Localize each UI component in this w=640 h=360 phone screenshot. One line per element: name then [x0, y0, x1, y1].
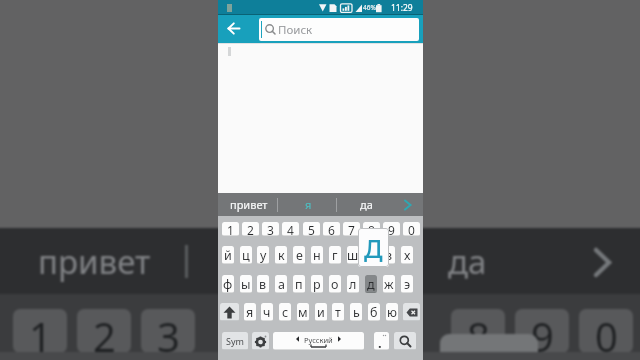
- button[interactable]: б: [368, 303, 380, 321]
- button[interactable]: Поиск: [259, 18, 419, 41]
- staticText: в: [259, 276, 267, 293]
- button[interactable]: я: [293, 193, 323, 216]
- staticText: привет: [230, 197, 268, 212]
- button[interactable]: г: [329, 246, 341, 264]
- button[interactable]: я: [244, 303, 256, 321]
- staticText: е: [296, 247, 303, 264]
- button[interactable]: э: [401, 275, 413, 293]
- button[interactable]: Sym: [222, 332, 248, 350]
- button[interactable]: р: [311, 275, 323, 293]
- staticText: с: [282, 304, 289, 321]
- staticText: о: [331, 276, 339, 293]
- button[interactable]: ь: [350, 303, 362, 321]
- staticText: м: [298, 304, 308, 321]
- staticText: э: [404, 276, 411, 293]
- button[interactable]: .: [374, 332, 389, 350]
- staticText: ж: [384, 276, 394, 293]
- button[interactable]: ц: [240, 246, 252, 264]
- staticText: з: [386, 247, 393, 264]
- staticText: ю: [387, 304, 397, 321]
- staticText: п: [295, 276, 303, 293]
- button[interactable]: з: [383, 246, 395, 264]
- button[interactable]: 7: [343, 222, 360, 236]
- button[interactable]: в: [257, 275, 269, 293]
- staticText: 6: [328, 222, 335, 236]
- staticText: Д: [364, 231, 383, 265]
- button[interactable]: м: [297, 303, 309, 321]
- button[interactable]: 6: [323, 222, 340, 236]
- staticText: 3: [267, 222, 274, 236]
- staticText: и: [317, 304, 325, 321]
- staticText: ы: [241, 276, 251, 293]
- button[interactable]: ж: [383, 275, 395, 293]
- button[interactable]: щ: [365, 246, 377, 264]
- button[interactable]: [403, 303, 420, 321]
- staticText: 0: [408, 222, 415, 236]
- button[interactable]: привет: [219, 193, 279, 216]
- staticText: а: [278, 276, 285, 293]
- button[interactable]: 4: [282, 222, 299, 236]
- button[interactable]: [220, 303, 239, 321]
- staticText: 8: [467, 309, 490, 353]
- button[interactable]: 3: [262, 222, 279, 236]
- button[interactable]: д: [365, 275, 377, 293]
- button[interactable]: 5: [303, 222, 320, 236]
- staticText: ц: [242, 247, 250, 264]
- button[interactable]: ю: [386, 303, 398, 321]
- staticText: 2: [93, 309, 116, 353]
- button[interactable]: т: [332, 303, 344, 321]
- button[interactable]: ы: [240, 275, 252, 293]
- staticText: 7: [348, 222, 355, 236]
- staticText: ч: [263, 304, 271, 321]
- button[interactable]: е: [293, 246, 305, 264]
- button[interactable]: [394, 332, 416, 350]
- button[interactable]: Русский: [273, 332, 364, 350]
- staticText: 9: [388, 222, 395, 236]
- staticText: да: [448, 239, 487, 284]
- staticText: ш: [347, 247, 359, 264]
- button[interactable]: о: [329, 275, 341, 293]
- button[interactable]: ф: [222, 275, 234, 293]
- button[interactable]: 1: [222, 222, 239, 236]
- button[interactable]: [227, 22, 241, 35]
- button[interactable]: п: [293, 275, 305, 293]
- button[interactable]: 0: [403, 222, 420, 236]
- staticText: 46%: [363, 3, 376, 12]
- button[interactable]: с: [279, 303, 291, 321]
- button[interactable]: ч: [261, 303, 273, 321]
- button[interactable]: к: [275, 246, 287, 264]
- button[interactable]: ш: [347, 246, 359, 264]
- staticText: 3: [157, 309, 180, 353]
- button[interactable]: и: [315, 303, 327, 321]
- staticText: н: [313, 247, 321, 264]
- button[interactable]: у: [257, 246, 269, 264]
- staticText: 8: [368, 222, 375, 236]
- button[interactable]: 2: [242, 222, 259, 236]
- button[interactable]: 9: [383, 222, 400, 236]
- staticText: Sym: [226, 335, 244, 347]
- button[interactable]: н: [311, 246, 323, 264]
- button[interactable]: да: [346, 193, 386, 216]
- staticText: 1: [29, 309, 52, 353]
- button[interactable]: [403, 200, 413, 210]
- staticText: б: [370, 304, 378, 321]
- staticText: ь: [353, 304, 360, 321]
- button[interactable]: л: [347, 275, 359, 293]
- staticText: 2: [247, 222, 254, 236]
- staticText: р: [313, 276, 321, 293]
- staticText: да: [360, 197, 373, 212]
- button[interactable]: й: [222, 246, 234, 264]
- staticText: д: [367, 276, 375, 293]
- staticText: к: [278, 247, 285, 264]
- staticText: я: [305, 197, 312, 212]
- staticText: 0: [595, 309, 618, 353]
- staticText: Поиск: [278, 22, 313, 38]
- staticText: у: [260, 247, 267, 264]
- staticText: 4: [287, 222, 294, 236]
- button[interactable]: [252, 332, 269, 350]
- staticText: Русский: [304, 335, 333, 345]
- staticText: г: [332, 247, 338, 264]
- button[interactable]: х: [401, 246, 413, 264]
- button[interactable]: а: [275, 275, 287, 293]
- button[interactable]: 8: [363, 222, 380, 236]
